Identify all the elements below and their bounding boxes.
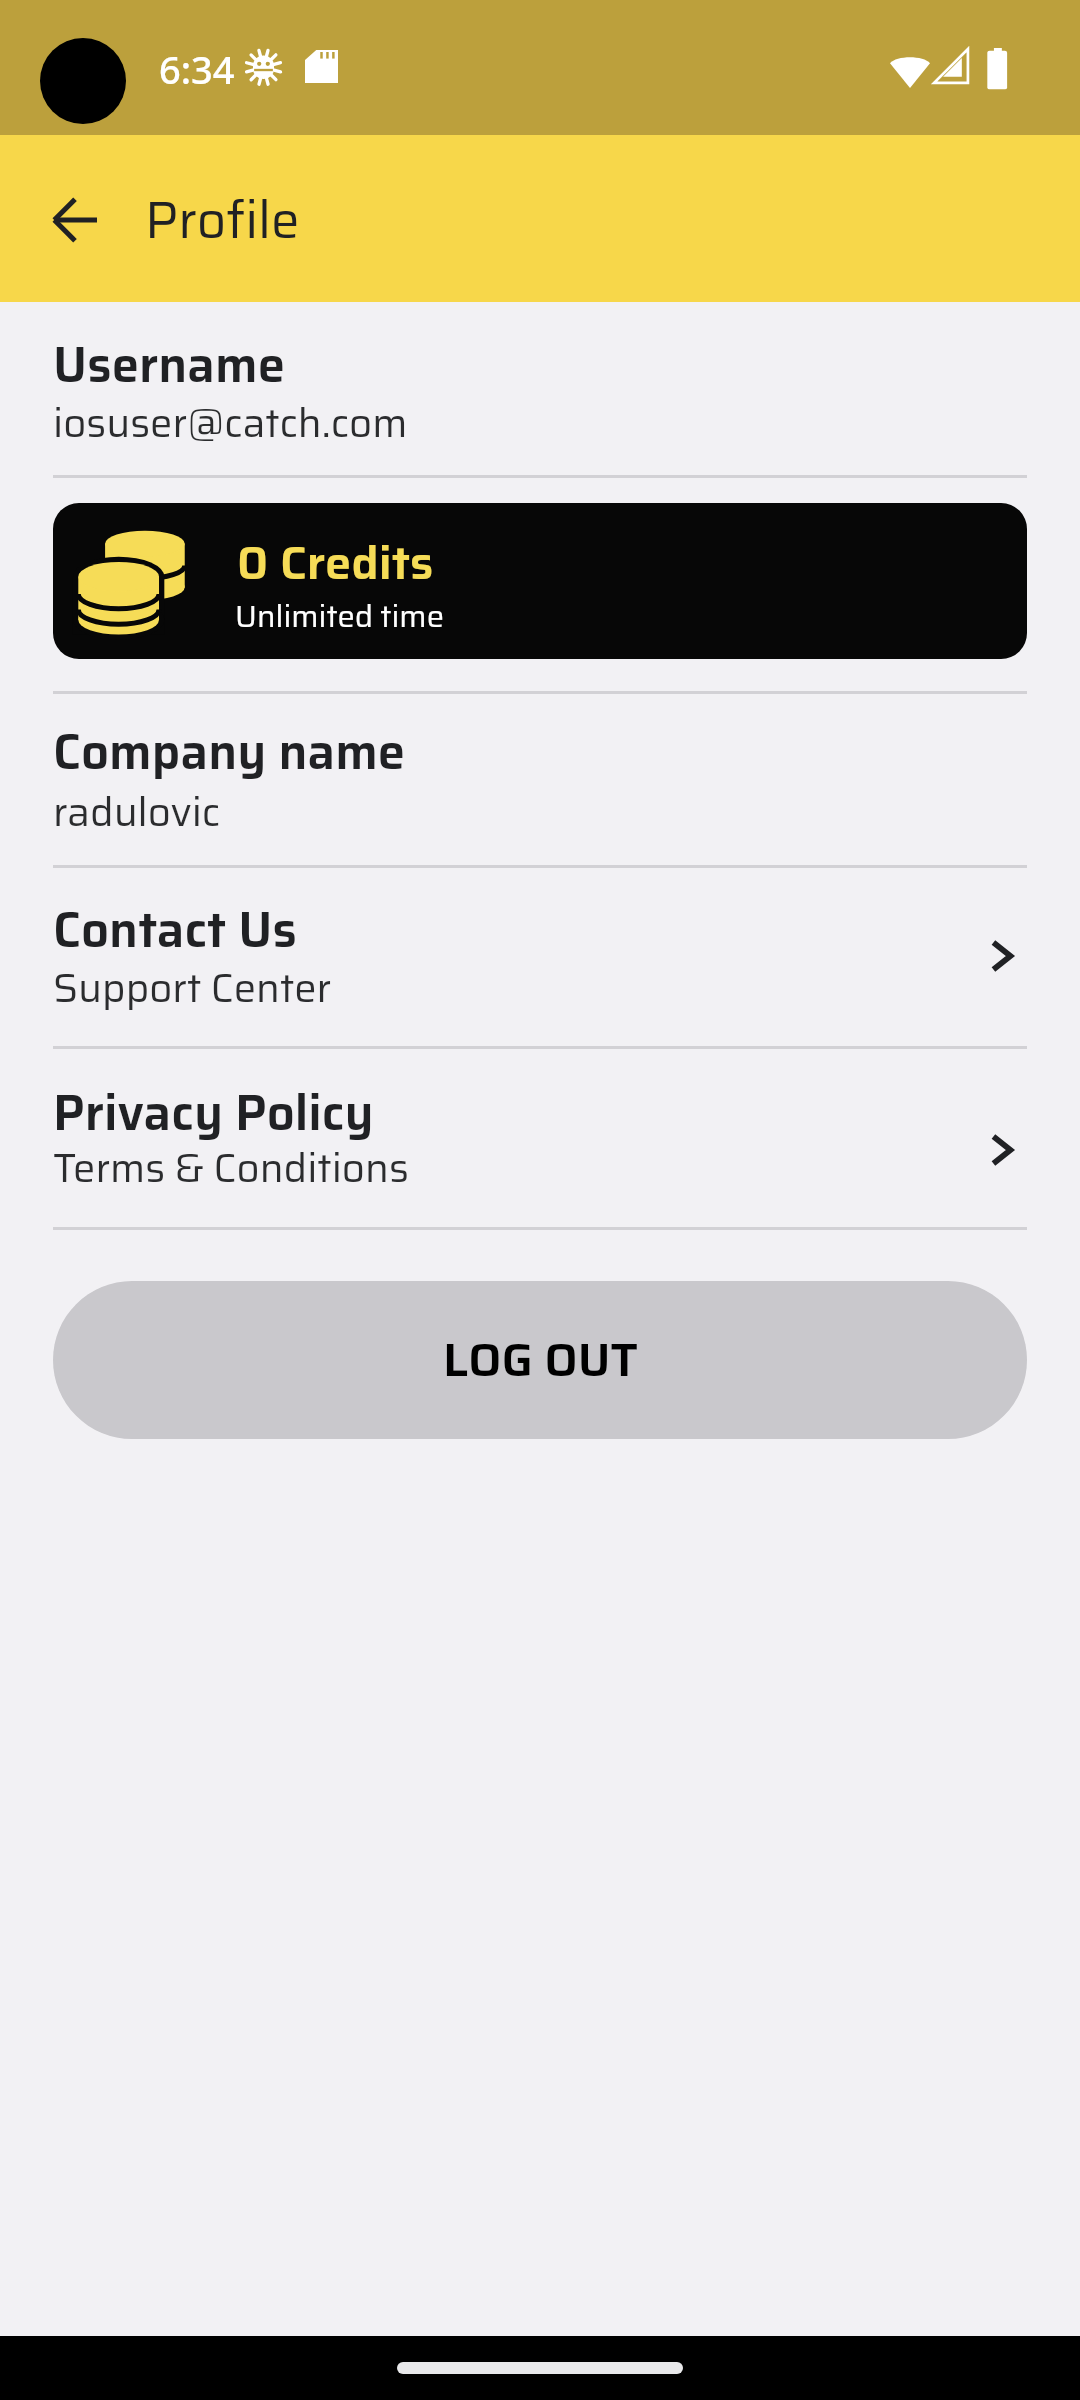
button[interactable] — [0, 1062, 1080, 1212]
staticText: Privacy Policy — [53, 1074, 374, 1151]
staticText: Unlimited time — [235, 592, 444, 641]
staticText: Support Center — [53, 957, 332, 1020]
staticText: Company name — [53, 713, 406, 790]
staticText: 0 Credits — [237, 526, 434, 600]
staticText: Contact Us — [53, 891, 297, 968]
staticText: 6:34 — [159, 43, 235, 95]
button[interactable]: LOG OUT — [53, 1281, 1027, 1439]
button[interactable]: Back — [26, 171, 124, 269]
staticText: Username — [53, 326, 286, 403]
button[interactable] — [0, 880, 1080, 1030]
staticText: radulovic — [53, 781, 221, 844]
staticText: LOG OUT — [443, 1323, 638, 1397]
staticText: Profile — [145, 180, 300, 260]
staticText: iosuser@catch.com — [53, 392, 408, 455]
button[interactable]: 0 Credits — [53, 503, 1027, 659]
staticText: Terms & Conditions — [53, 1137, 409, 1200]
